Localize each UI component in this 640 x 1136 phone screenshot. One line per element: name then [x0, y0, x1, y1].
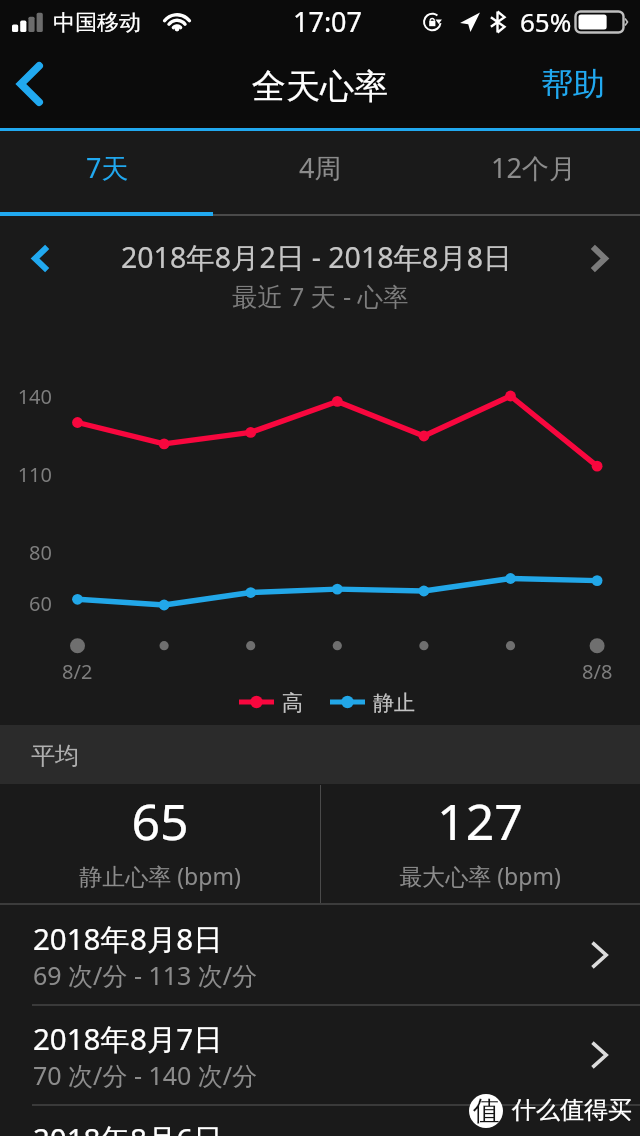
- staticText: 110: [2, 461, 52, 488]
- staticText: 8/8: [582, 658, 613, 685]
- staticText: 帮助: [541, 64, 605, 104]
- staticText: 静止: [373, 690, 415, 716]
- staticText: 高: [282, 690, 303, 716]
- button[interactable]: 4周: [214, 131, 427, 216]
- button[interactable]: 2018年8月7日: [0, 1005, 640, 1105]
- button[interactable]: 65: [0, 784, 320, 904]
- button[interactable]: Next week: [564, 228, 636, 288]
- staticText: 69 次/分 - 113 次/分: [33, 958, 258, 992]
- staticText: 最大心率 (bpm): [320, 860, 640, 891]
- staticText: 80: [2, 539, 52, 566]
- staticText: 静止心率 (bpm): [0, 860, 320, 891]
- button[interactable]: 12个月: [427, 131, 640, 216]
- staticText: 中国移动: [53, 9, 141, 37]
- staticText: 2018年8月6日: [33, 1118, 223, 1136]
- staticText: 平均: [31, 741, 79, 771]
- staticText: 70 次/分 - 140 次/分: [33, 1058, 258, 1092]
- staticText: 2018年8月8日: [33, 918, 223, 958]
- button[interactable]: 7天: [0, 131, 214, 216]
- other: Open day detail: [592, 942, 608, 968]
- staticText: 140: [2, 383, 52, 410]
- button[interactable]: Back: [0, 42, 76, 128]
- button[interactable]: 帮助: [506, 42, 640, 128]
- button[interactable]: 2018年8月6日: [0, 1105, 640, 1136]
- staticText: 65: [0, 787, 320, 855]
- staticText: 全天心率: [252, 65, 388, 108]
- staticText: 4周: [299, 149, 342, 186]
- staticText: 12个月: [491, 149, 576, 186]
- staticText: 65%: [520, 4, 572, 39]
- staticText: 7天: [86, 149, 129, 186]
- button[interactable]: Previous week: [4, 228, 76, 288]
- other: Open day detail: [592, 1042, 608, 1068]
- button[interactable]: 2018年8月8日: [0, 905, 640, 1005]
- staticText: 60: [2, 590, 52, 617]
- button[interactable]: 127: [320, 784, 640, 904]
- staticText: 什么值得买: [512, 1095, 632, 1125]
- staticText: 2018年8月7日: [33, 1018, 223, 1058]
- staticText: 8/2: [62, 658, 93, 685]
- staticText: 值: [473, 1094, 500, 1128]
- staticText: 127: [320, 787, 640, 855]
- staticText: 2018年8月2日 - 2018年8月8日: [121, 238, 512, 277]
- staticText: 17:07: [293, 3, 363, 40]
- staticText: 最近 7 天 - 心率: [232, 279, 409, 314]
